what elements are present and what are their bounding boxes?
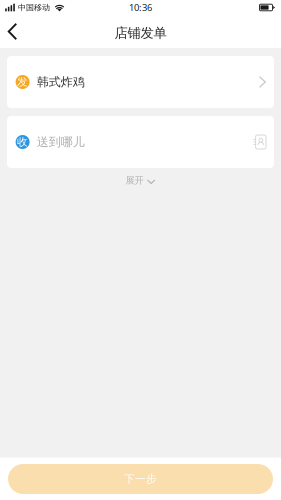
button[interactable]: 发: [7, 56, 274, 108]
button[interactable]: Back: [1, 16, 23, 47]
staticText: 中国移动: [18, 3, 50, 12]
staticText: 送到哪儿: [37, 135, 85, 149]
button[interactable]: 展开: [110, 168, 171, 193]
staticText: 韩式炸鸡: [37, 75, 85, 89]
staticText: 展开: [126, 175, 144, 186]
staticText: 收: [17, 135, 28, 148]
staticText: 店铺发单: [114, 25, 166, 41]
button[interactable]: 收: [7, 116, 274, 168]
staticText: 下一步: [124, 472, 157, 485]
button[interactable]: 下一步: [8, 464, 273, 494]
staticText: 10:36: [129, 1, 152, 14]
staticText: 发: [17, 75, 28, 88]
button[interactable]: 选择联系人: [253, 134, 266, 149]
